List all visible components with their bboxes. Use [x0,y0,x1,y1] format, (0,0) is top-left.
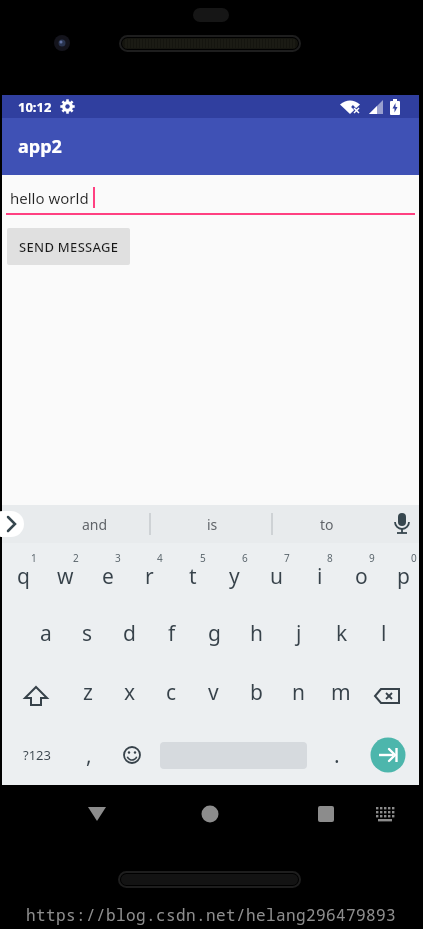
button[interactable] [280,785,419,843]
button[interactable]: m [325,662,356,722]
staticText: to [320,515,334,534]
staticText: v [208,678,219,707]
button[interactable]: z [72,662,103,722]
button[interactable]: x [114,662,145,722]
staticText: . [334,741,340,770]
staticText: k [336,619,348,648]
button[interactable]: w [50,545,81,607]
staticText: 3 [115,551,121,565]
staticText: m [331,678,351,707]
button[interactable]: r [134,545,165,607]
staticText: b [250,678,263,707]
staticText: p [397,562,410,591]
staticText: 7 [284,551,290,565]
staticText: y [229,562,240,591]
staticText: j [296,619,302,648]
staticText: ?123 [23,746,51,764]
staticText: d [123,619,136,648]
button[interactable]: e [92,545,123,607]
button[interactable]: t [177,545,208,607]
button[interactable]: hello world [6,187,415,215]
staticText: x [124,678,136,707]
button[interactable] [0,511,24,537]
staticText: 5 [200,551,206,565]
button[interactable]: n [283,662,314,722]
staticText: is [207,515,218,534]
button[interactable]: y [219,545,250,607]
button[interactable]: d [114,603,145,663]
staticText: , [86,741,92,770]
staticText: w [57,562,74,591]
button[interactable]: g [199,603,230,663]
button[interactable]: ?123 [15,725,59,785]
button[interactable]: and [55,505,135,543]
staticText: h [250,619,263,648]
staticText: and [82,515,108,534]
staticText: a [40,619,52,648]
button[interactable]: l [368,603,399,663]
button[interactable]: s [72,603,103,663]
button[interactable]: f [156,603,187,663]
staticText: 6 [242,551,248,565]
staticText: s [82,619,93,648]
staticText: f [168,619,176,648]
staticText: 10:12 [18,98,52,116]
button[interactable]: , [74,725,104,785]
staticText: 1 [31,551,37,565]
staticText: e [102,562,114,591]
button[interactable]: a [30,603,61,663]
button[interactable]: u [261,545,292,607]
staticText: SEND MESSAGE [19,238,119,256]
staticText: 4 [157,551,163,565]
staticText: n [292,678,305,707]
staticText: 8 [327,551,333,565]
staticText: hello world [10,188,93,208]
button[interactable]: h [241,603,272,663]
button[interactable]: i [304,545,335,607]
button[interactable]: . [322,725,352,785]
staticText: i [317,562,323,591]
button[interactable]: q [8,545,39,607]
button[interactable]: v [198,662,229,722]
button[interactable]: is [172,505,252,543]
staticText: 0 [411,551,417,565]
staticText: https://blog.csdn.net/helang296479893 [26,904,397,926]
button[interactable]: c [156,662,187,722]
button[interactable]: p [388,545,419,607]
staticText: q [17,562,30,591]
staticText: u [270,562,283,591]
staticText: c [166,678,177,707]
staticText: z [83,678,93,707]
staticText: t [189,562,197,591]
button[interactable]: j [283,603,314,663]
staticText: 2 [73,551,79,565]
button[interactable]: o [346,545,377,607]
staticText: o [355,562,368,591]
staticText: r [145,562,154,591]
staticText: app2 [18,134,62,159]
staticText: g [208,619,221,648]
staticText: l [381,619,387,648]
button[interactable]: to [287,505,367,543]
button[interactable]: k [326,603,357,663]
staticText: 9 [369,551,375,565]
button[interactable]: SEND MESSAGE [7,228,130,265]
button[interactable]: b [241,662,272,722]
button[interactable] [141,785,280,843]
button[interactable] [2,785,141,843]
